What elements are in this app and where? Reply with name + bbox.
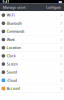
staticText: Location bbox=[7, 45, 21, 50]
staticText: Clock bbox=[7, 53, 16, 58]
button[interactable]: Commands bbox=[0, 27, 64, 36]
staticText: ▮▮▮ bbox=[58, 0, 61, 3]
staticText: Configure bbox=[46, 5, 61, 10]
staticText: iCloud bbox=[7, 78, 17, 83]
button[interactable]: Clock bbox=[0, 52, 64, 60]
staticText: Screen bbox=[7, 62, 18, 66]
button[interactable]: Bluetooth bbox=[0, 19, 64, 28]
staticText: Work bbox=[7, 37, 15, 42]
staticText: Manage users bbox=[3, 5, 26, 10]
button[interactable]: Work bbox=[0, 36, 64, 44]
button[interactable]: iCloud bbox=[0, 76, 64, 85]
staticText: Commands bbox=[7, 29, 25, 34]
button[interactable]: Wi-Fi bbox=[0, 11, 64, 19]
button[interactable]: Sound bbox=[0, 68, 64, 76]
staticText: Sound bbox=[7, 70, 17, 74]
staticText: Wi-Fi bbox=[7, 13, 15, 17]
button[interactable]: Screen bbox=[0, 60, 64, 68]
staticText: 9:41 bbox=[2, 0, 9, 4]
button[interactable]: Location bbox=[0, 44, 64, 52]
staticText: Bluetooth bbox=[7, 21, 22, 26]
staticText: Account bbox=[7, 86, 20, 91]
button[interactable]: Account bbox=[0, 85, 64, 93]
